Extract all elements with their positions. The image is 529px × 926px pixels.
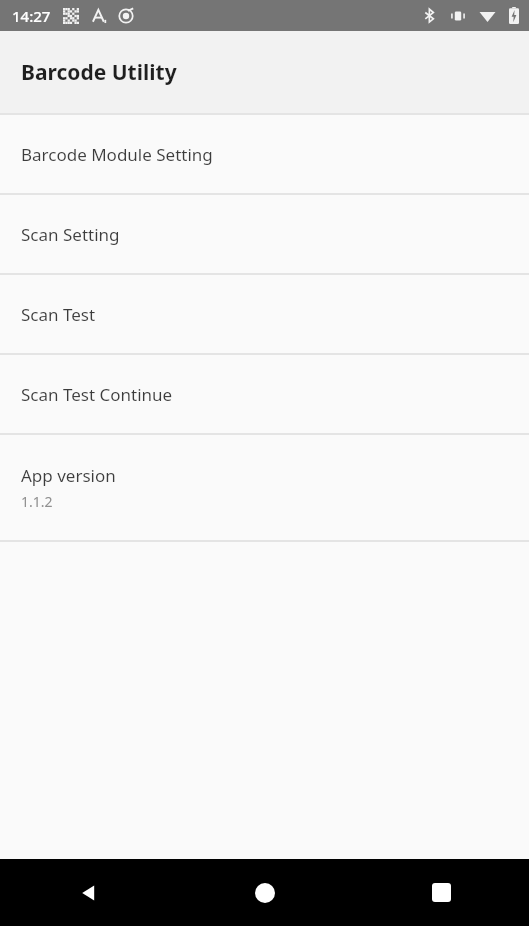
button[interactable]: Barcode Module Setting xyxy=(0,115,529,193)
staticText: Scan Test Continue xyxy=(21,383,173,406)
button[interactable]: App version xyxy=(0,435,529,540)
staticText: 1.1.2 xyxy=(21,492,53,511)
button[interactable]: Home xyxy=(177,859,353,926)
button[interactable]: Back xyxy=(0,859,177,926)
button[interactable]: Scan Test Continue xyxy=(0,355,529,433)
staticText: Barcode Utility xyxy=(21,58,177,87)
staticText: 14:27 xyxy=(12,6,51,26)
button[interactable]: Scan Test xyxy=(0,275,529,353)
staticText: App version xyxy=(21,464,116,487)
button[interactable]: Scan Setting xyxy=(0,195,529,273)
staticText: Barcode Module Setting xyxy=(21,143,213,166)
staticText: Scan Test xyxy=(21,303,96,326)
button[interactable]: Recent apps xyxy=(353,859,529,926)
staticText: Scan Setting xyxy=(21,223,120,246)
